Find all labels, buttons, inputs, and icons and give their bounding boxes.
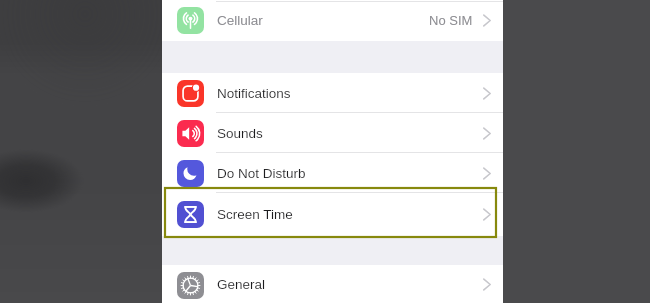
staticText: Do Not Disturb (217, 166, 306, 181)
staticText: Notifications (217, 86, 291, 101)
staticText: Screen Time (217, 207, 293, 222)
button[interactable]: Screen Time (162, 193, 503, 236)
staticText: Cellular (217, 13, 263, 28)
button[interactable]: Sounds (162, 113, 503, 153)
button[interactable]: Do Not Disturb (162, 153, 503, 193)
button[interactable]: Cellular (162, 0, 503, 41)
button[interactable]: Notifications (162, 73, 503, 113)
staticText: Sounds (217, 126, 263, 141)
button[interactable]: General (162, 265, 503, 303)
staticText: No SIM (429, 13, 473, 28)
staticText: General (217, 277, 266, 292)
